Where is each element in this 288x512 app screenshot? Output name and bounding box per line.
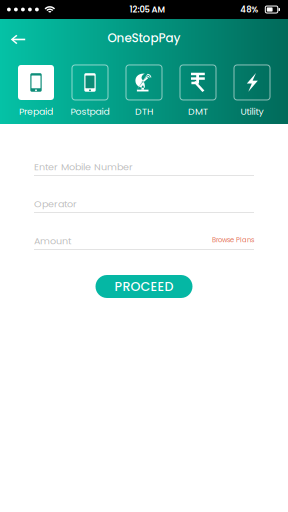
staticText: Utility: [240, 105, 263, 118]
staticText: Prepaid: [19, 105, 53, 118]
button[interactable]: Back: [5, 25, 31, 51]
button[interactable]: Utility: [225, 66, 279, 117]
staticText: Enter Mobile Number: [34, 160, 133, 174]
staticText: Amount: [34, 234, 71, 248]
staticText: DMT: [188, 105, 208, 118]
staticText: DTH: [135, 105, 153, 118]
button[interactable]: DTH: [117, 66, 171, 117]
button[interactable]: Postpaid: [63, 66, 117, 117]
staticText: Browse Plans: [212, 235, 254, 245]
button[interactable]: Browse Plans: [212, 236, 254, 244]
staticText: 48%: [240, 4, 258, 15]
staticText: OneStopPay: [107, 30, 180, 46]
button[interactable]: Prepaid: [9, 66, 63, 117]
staticText: PROCEED: [114, 278, 173, 295]
staticText: Postpaid: [70, 105, 109, 118]
button[interactable]: DMT: [171, 66, 225, 117]
staticText: 12:05 AM: [130, 4, 166, 15]
staticText: Operator: [34, 197, 77, 211]
button[interactable]: PROCEED: [95, 275, 192, 298]
